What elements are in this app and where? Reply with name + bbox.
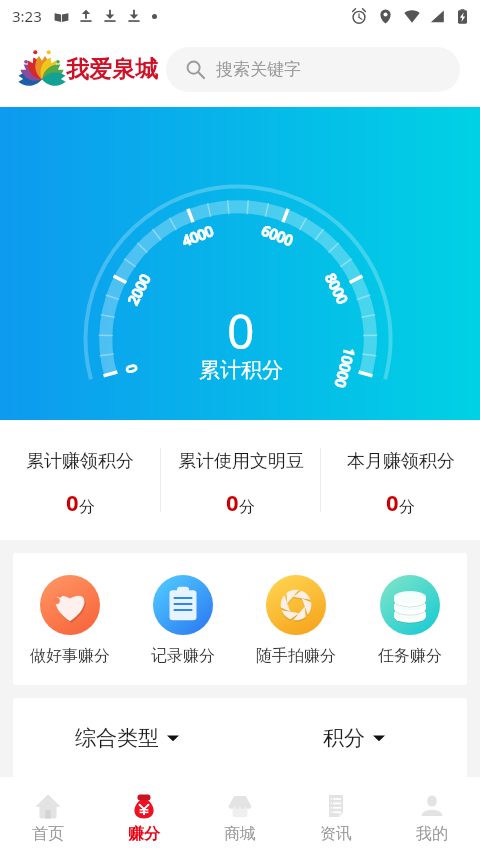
button[interactable]: 记录赚分 <box>126 553 239 685</box>
button[interactable]: 我的 <box>384 777 480 853</box>
staticText: 首页 <box>32 824 64 844</box>
staticText: 分 <box>239 497 255 517</box>
button[interactable]: 任务赚分 <box>353 553 467 685</box>
staticText: 我的 <box>416 824 448 844</box>
button[interactable]: 做好事赚分 <box>13 553 126 685</box>
staticText: 商城 <box>224 824 256 844</box>
button[interactable]: 赚分 <box>96 777 192 853</box>
staticText: 累计使用文明豆 <box>178 450 304 473</box>
staticText: 我爱泉城 <box>66 55 158 84</box>
staticText: 0 <box>227 298 255 363</box>
button[interactable]: 积分 <box>240 698 467 777</box>
button[interactable]: 本月赚领积分 <box>321 420 480 540</box>
button[interactable]: 资讯 <box>288 777 384 853</box>
button[interactable]: 累计使用文明豆 <box>161 420 320 540</box>
staticText: 积分 <box>323 725 365 751</box>
button[interactable]: 累计赚领积分 <box>0 420 160 540</box>
staticText: 记录赚分 <box>151 646 215 666</box>
staticText: 搜索关键字 <box>216 59 301 80</box>
staticText: 累计积分 <box>199 357 283 383</box>
staticText: 分 <box>79 497 95 517</box>
staticText: 0 <box>386 487 399 517</box>
staticText: 0 <box>66 487 79 517</box>
button[interactable]: 综合类型 <box>13 698 240 777</box>
staticText: 任务赚分 <box>378 646 442 666</box>
staticText: 随手拍赚分 <box>256 646 336 666</box>
staticText: 本月赚领积分 <box>347 450 455 473</box>
staticText: 累计赚领积分 <box>26 450 134 473</box>
button[interactable]: 搜索关键字 <box>166 47 460 92</box>
staticText: 赚分 <box>128 824 160 844</box>
staticText: 资讯 <box>320 824 352 844</box>
staticText: 0 <box>226 487 239 517</box>
button[interactable]: 首页 <box>0 777 96 853</box>
staticText: 做好事赚分 <box>30 646 110 666</box>
staticText: 3:23 <box>12 6 42 26</box>
staticText: 分 <box>399 497 415 517</box>
button[interactable]: 随手拍赚分 <box>239 553 353 685</box>
button[interactable]: 商城 <box>192 777 288 853</box>
staticText: 综合类型 <box>75 725 159 751</box>
